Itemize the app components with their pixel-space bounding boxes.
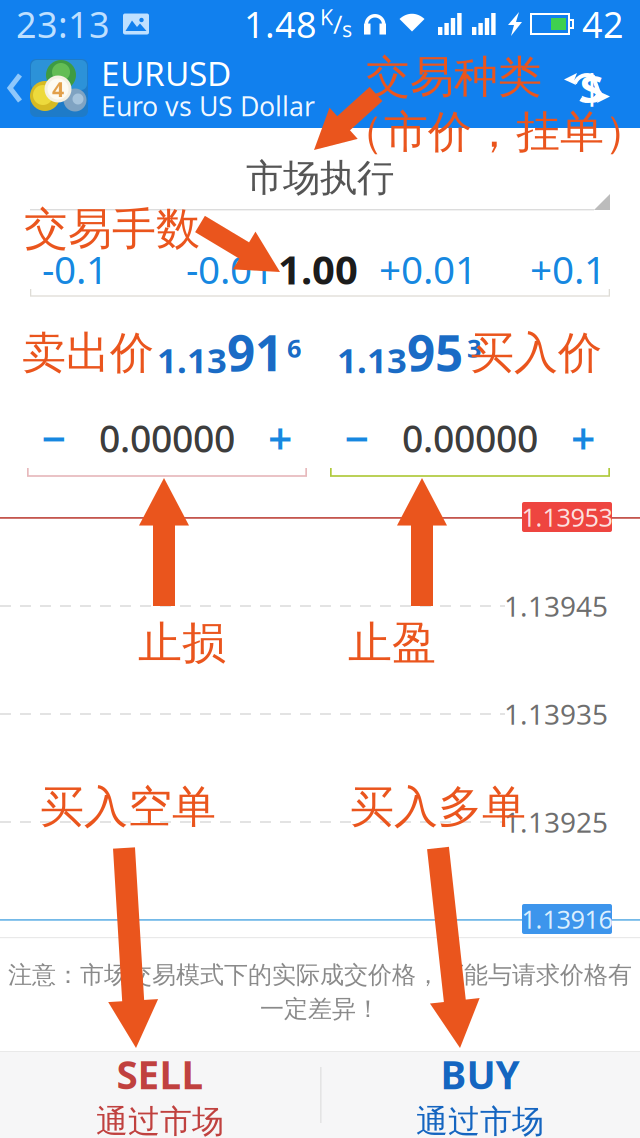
staticText: 23:13	[16, 0, 110, 48]
staticText: 1.13	[157, 337, 227, 383]
button[interactable]: BUY	[320, 1052, 640, 1138]
button[interactable]: Decrease stop loss	[27, 414, 81, 462]
staticText: -0.1	[42, 243, 108, 295]
button[interactable]: New order	[556, 58, 620, 118]
staticText: 0.00000	[99, 413, 235, 463]
staticText: 1.13935	[504, 695, 608, 733]
button[interactable]: +0.1	[513, 248, 623, 290]
button[interactable]: Decrease take profit	[330, 414, 384, 462]
staticText: 市场执行	[246, 155, 394, 201]
staticText: 91	[227, 319, 283, 385]
staticText: 交易手数	[24, 202, 200, 256]
staticText: -0.01	[186, 243, 274, 295]
staticText: 1.13916	[521, 902, 612, 936]
staticText: 3	[467, 331, 481, 365]
staticText: 买入空单	[40, 780, 216, 834]
staticText: +	[268, 410, 292, 466]
staticText: BUY	[440, 1049, 519, 1100]
button[interactable]: Increase stop loss	[253, 414, 307, 462]
staticText: −	[344, 410, 369, 466]
staticText: 止盈	[348, 616, 436, 670]
staticText: SELL	[116, 1049, 203, 1100]
staticText: $	[580, 61, 604, 115]
staticText: 注意：市场交易模式下的实际成交价格，可能与请求价格有	[8, 960, 632, 990]
button[interactable]: -0.1	[20, 248, 130, 290]
staticText: Euro vs US Dollar	[101, 88, 315, 124]
staticText: 通过市场	[96, 1102, 224, 1138]
staticText: 止损	[138, 616, 226, 670]
staticText: 买入多单	[350, 780, 526, 834]
staticText: （市价，挂单）	[340, 105, 640, 159]
button[interactable]: Back	[0, 48, 30, 128]
staticText: s	[342, 15, 352, 43]
button[interactable]: Increase take profit	[556, 414, 610, 462]
staticText: K	[320, 3, 333, 31]
staticText: +0.1	[530, 243, 606, 295]
staticText: 6	[287, 331, 301, 365]
staticText: 买入价	[470, 326, 602, 380]
staticText: 1.13	[337, 337, 407, 383]
staticText: /	[333, 7, 342, 41]
staticText: 0.00000	[402, 413, 538, 463]
staticText: 卖出价	[22, 326, 154, 380]
staticText: 1.13953	[521, 500, 612, 534]
staticText: 1.13945	[504, 587, 608, 625]
staticText: EURUSD	[101, 51, 231, 95]
staticText: 1.00	[278, 242, 358, 295]
staticText: 95	[407, 319, 463, 385]
staticText: +0.01	[379, 243, 477, 295]
button[interactable]: SELL	[0, 1052, 320, 1138]
staticText: +	[571, 410, 595, 466]
staticText: 1.13925	[504, 803, 608, 841]
staticText: 4	[52, 75, 64, 103]
staticText: 一定差异！	[260, 994, 380, 1024]
button[interactable]: +0.01	[373, 248, 483, 290]
staticText: 通过市场	[416, 1102, 544, 1138]
button[interactable]: -0.01	[175, 248, 285, 290]
staticText: 42	[582, 0, 624, 48]
staticText: 交易种类	[366, 50, 542, 104]
staticText: −	[41, 410, 66, 466]
staticText: 1.48	[244, 0, 317, 48]
